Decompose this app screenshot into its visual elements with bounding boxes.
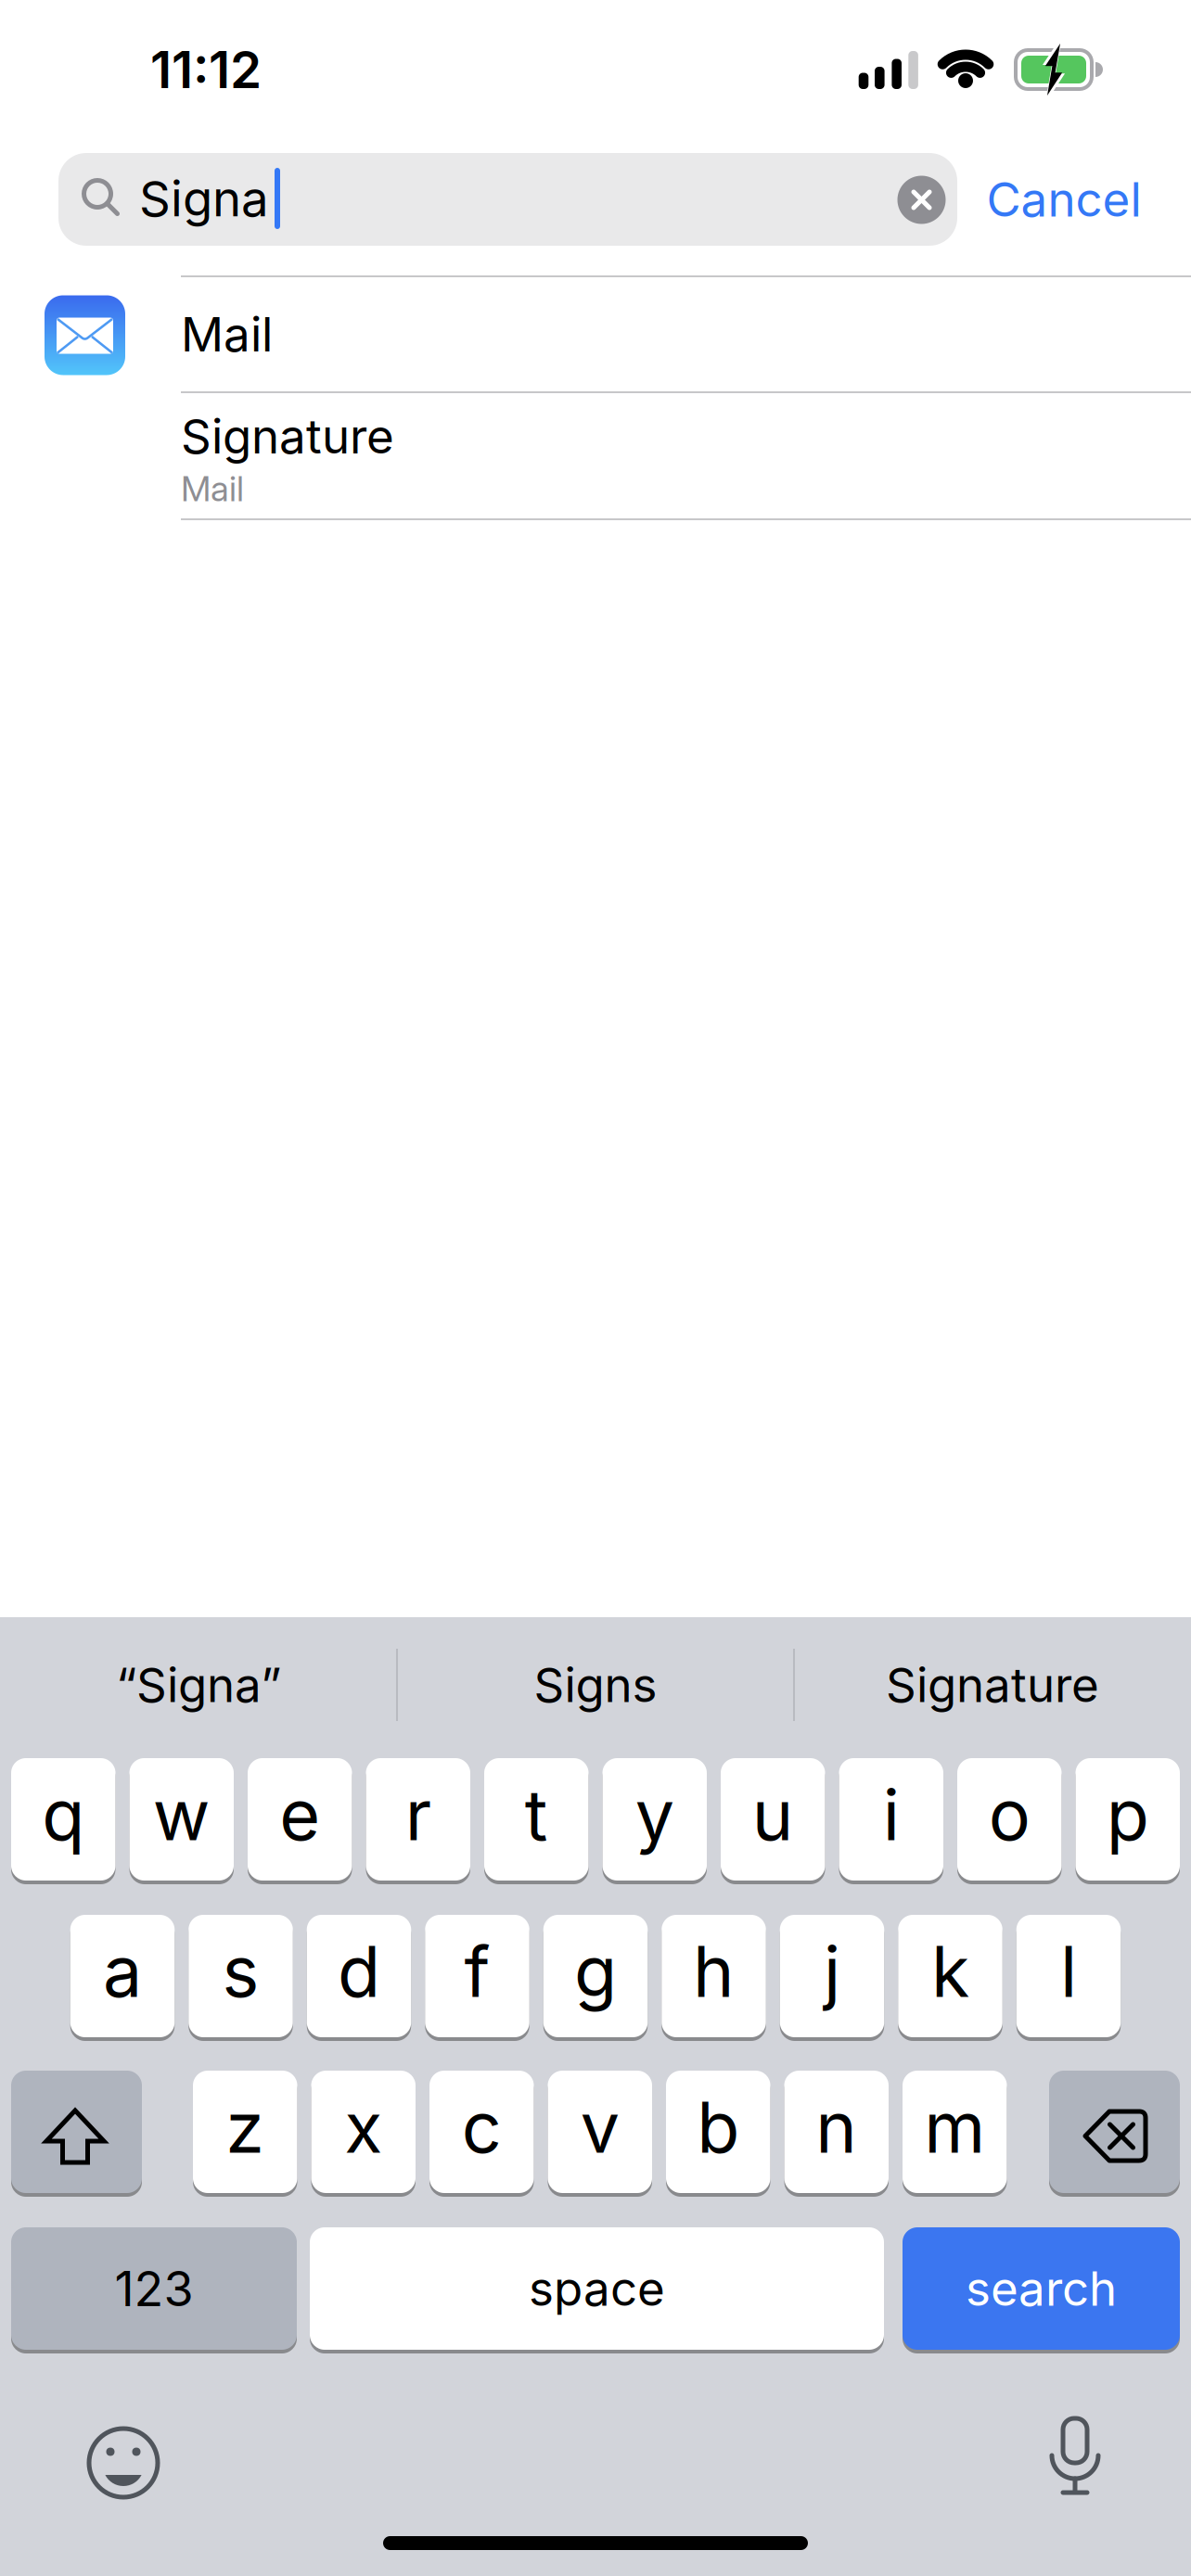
staticText: x [344, 2085, 382, 2169]
staticText: Signature [886, 1656, 1099, 1713]
button[interactable]: Emoji [82, 2421, 165, 2505]
button[interactable]: i [839, 1758, 943, 1881]
staticText: n [816, 2085, 857, 2169]
button[interactable]: p [1076, 1758, 1180, 1881]
staticText: Mail [181, 468, 244, 510]
staticText: space [529, 2260, 665, 2317]
button[interactable]: l [1016, 1915, 1121, 2037]
button[interactable]: Mail [0, 276, 1191, 392]
button[interactable]: m [903, 2071, 1007, 2193]
staticText: w [153, 1772, 210, 1857]
button[interactable]: j [780, 1915, 884, 2037]
button[interactable]: Search [58, 153, 957, 246]
staticText: q [42, 1772, 85, 1857]
button[interactable]: x [311, 2071, 416, 2193]
button[interactable]: c [429, 2071, 534, 2193]
button[interactable]: Cancel [986, 171, 1141, 228]
staticText: d [338, 1929, 380, 2014]
staticText: Signa [139, 169, 269, 228]
button[interactable]: b [666, 2071, 770, 2193]
button[interactable]: h [662, 1915, 766, 2037]
button[interactable]: Delete [1049, 2071, 1180, 2193]
button[interactable]: Shift [11, 2071, 142, 2193]
button[interactable]: g [543, 1915, 648, 2037]
staticText: b [697, 2085, 739, 2169]
button[interactable]: Signs [419, 1634, 772, 1736]
button[interactable]: search [903, 2227, 1180, 2350]
staticText: i [883, 1772, 900, 1857]
button[interactable]: e [248, 1758, 352, 1881]
staticText: 123 [115, 2259, 193, 2318]
staticText: p [1106, 1772, 1149, 1857]
button[interactable]: z [193, 2071, 297, 2193]
staticText: “Signa” [116, 1656, 281, 1713]
staticText: e [279, 1772, 320, 1857]
staticText: c [462, 2085, 502, 2169]
staticText: j [824, 1929, 840, 2014]
staticText: o [989, 1772, 1030, 1857]
button[interactable]: d [307, 1915, 411, 2037]
staticText: y [635, 1772, 674, 1857]
staticText: Signs [534, 1656, 657, 1713]
staticText: l [1060, 1929, 1077, 2014]
staticText: s [222, 1929, 259, 2014]
staticText: t [525, 1772, 548, 1857]
button[interactable]: “Signa” [22, 1634, 375, 1736]
staticText: g [574, 1929, 617, 2014]
button[interactable]: q [11, 1758, 115, 1881]
button[interactable]: k [898, 1915, 1002, 2037]
staticText: h [693, 1929, 735, 2014]
button[interactable]: f [425, 1915, 529, 2037]
staticText: a [103, 1929, 142, 2014]
button[interactable]: Dictation [1043, 2415, 1108, 2504]
button[interactable]: Signature [0, 392, 1191, 519]
staticText: u [752, 1772, 794, 1857]
staticText: m [924, 2085, 985, 2169]
button[interactable]: v [548, 2071, 652, 2193]
button[interactable]: a [70, 1915, 175, 2037]
button[interactable]: Clear text [897, 176, 946, 224]
button[interactable]: t [484, 1758, 589, 1881]
button[interactable]: r [366, 1758, 470, 1881]
button[interactable]: w [129, 1758, 234, 1881]
button[interactable]: y [602, 1758, 707, 1881]
staticText: 11:12 [150, 39, 262, 100]
staticText: k [931, 1929, 969, 2014]
button[interactable]: n [784, 2071, 889, 2193]
button[interactable]: u [721, 1758, 825, 1881]
staticText: r [405, 1772, 431, 1857]
button[interactable]: 123 [11, 2227, 297, 2350]
button[interactable]: s [188, 1915, 293, 2037]
staticText: search [966, 2260, 1117, 2317]
staticText: f [464, 1929, 490, 2014]
button[interactable]: o [957, 1758, 1062, 1881]
staticText: Mail [181, 306, 273, 363]
button[interactable]: space [310, 2227, 884, 2350]
staticText: Signature [181, 408, 394, 465]
staticText: v [580, 2085, 619, 2169]
staticText: z [226, 2085, 265, 2169]
button[interactable]: Signature [816, 1634, 1169, 1736]
staticText: Cancel [986, 171, 1141, 228]
